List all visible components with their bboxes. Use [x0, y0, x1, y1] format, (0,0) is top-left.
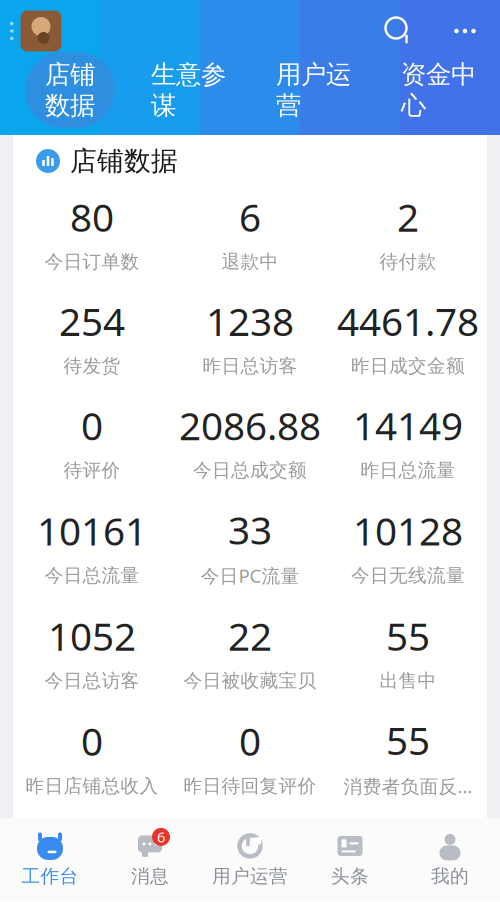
button[interactable]: 0 — [171, 715, 329, 797]
staticText: 今日订单数 — [44, 250, 139, 273]
staticText: 33 — [228, 504, 272, 555]
staticText: 55 — [386, 610, 430, 661]
staticText: 生意参谋 — [151, 59, 226, 121]
staticText: 昨日店铺总收入 — [25, 774, 158, 797]
staticText: 55 — [386, 714, 430, 765]
staticText: 昨日总访客 — [202, 355, 297, 377]
button[interactable]: 4461.78 — [329, 295, 487, 378]
staticText: 今日总访客 — [44, 669, 139, 692]
staticText: 店铺数据 — [70, 145, 178, 177]
staticText: 昨日待回复评价 — [183, 774, 316, 797]
staticText: 工作台 — [21, 865, 78, 888]
staticText: 今日总流量 — [44, 564, 139, 587]
button[interactable]: 1052 — [13, 610, 171, 692]
button[interactable]: 6 — [100, 824, 200, 896]
staticText: 10128 — [353, 505, 463, 556]
button[interactable]: 0 — [13, 715, 171, 797]
staticText: 待付款 — [379, 250, 436, 273]
staticText: 2 — [397, 191, 419, 242]
staticText: 4461.78 — [337, 295, 479, 347]
staticText: 待评价 — [63, 459, 120, 482]
button[interactable]: 55 — [329, 610, 487, 692]
button[interactable]: 生意参谋 — [137, 52, 240, 128]
button[interactable]: More — [450, 16, 480, 46]
staticText: 退款中 — [221, 250, 278, 273]
button[interactable]: 2086.88 — [171, 400, 329, 482]
staticText: 254 — [59, 295, 125, 347]
button[interactable]: 33 — [171, 504, 329, 588]
staticText: 1238 — [206, 295, 294, 347]
staticText: 出售中 — [379, 669, 436, 692]
button[interactable]: 用户运营 — [200, 824, 300, 896]
staticText: 昨日成交金额 — [351, 355, 465, 377]
staticText: 资金中心 — [401, 59, 476, 121]
button[interactable]: 10161 — [13, 505, 171, 587]
staticText: 我的 — [431, 865, 469, 888]
staticText: 14149 — [353, 400, 463, 451]
staticText: 今日PC流量 — [200, 563, 299, 588]
button[interactable]: 用户运营 — [262, 52, 365, 128]
staticText: 0 — [81, 400, 103, 451]
staticText: 今日总成交额 — [193, 459, 307, 482]
staticText: 今日无线流量 — [351, 564, 465, 587]
button[interactable]: Search — [384, 16, 414, 46]
staticText: 用户运营 — [276, 59, 351, 121]
staticText: 店铺数据 — [45, 59, 95, 121]
staticText: 22 — [228, 610, 272, 661]
button[interactable]: 6 — [171, 191, 329, 273]
button[interactable]: 254 — [13, 295, 171, 378]
staticText: 消费者负面反… — [343, 774, 472, 798]
staticText: 1052 — [48, 610, 136, 661]
staticText: 头条 — [331, 865, 369, 888]
button[interactable]: 资金中心 — [387, 52, 490, 128]
button[interactable]: 头条 — [300, 824, 400, 896]
staticText: 2086.88 — [179, 400, 321, 451]
staticText: 今日被收藏宝贝 — [183, 669, 316, 692]
staticText: 10161 — [37, 505, 147, 556]
staticText: 待发货 — [63, 355, 120, 377]
staticText: 昨日总流量 — [360, 459, 455, 482]
staticText: 80 — [70, 191, 114, 242]
staticText: 消息 — [131, 865, 169, 888]
button[interactable]: 22 — [171, 610, 329, 692]
staticText: 0 — [239, 715, 261, 766]
button[interactable]: 10128 — [329, 505, 487, 587]
button[interactable]: 55 — [329, 714, 487, 798]
button[interactable]: Profile — [20, 10, 61, 51]
staticText: 6 — [157, 827, 165, 847]
button[interactable]: 80 — [13, 191, 171, 273]
button[interactable]: 我的 — [400, 824, 500, 896]
button[interactable]: 1238 — [171, 295, 329, 378]
staticText: 6 — [239, 191, 261, 242]
staticText: 0 — [81, 715, 103, 766]
button[interactable]: 工作台 — [0, 824, 100, 896]
button[interactable]: 2 — [329, 191, 487, 273]
staticText: 用户运营 — [212, 865, 288, 888]
button[interactable]: 店铺数据 — [25, 52, 115, 128]
button[interactable]: 0 — [13, 400, 171, 482]
button[interactable]: 14149 — [329, 400, 487, 482]
